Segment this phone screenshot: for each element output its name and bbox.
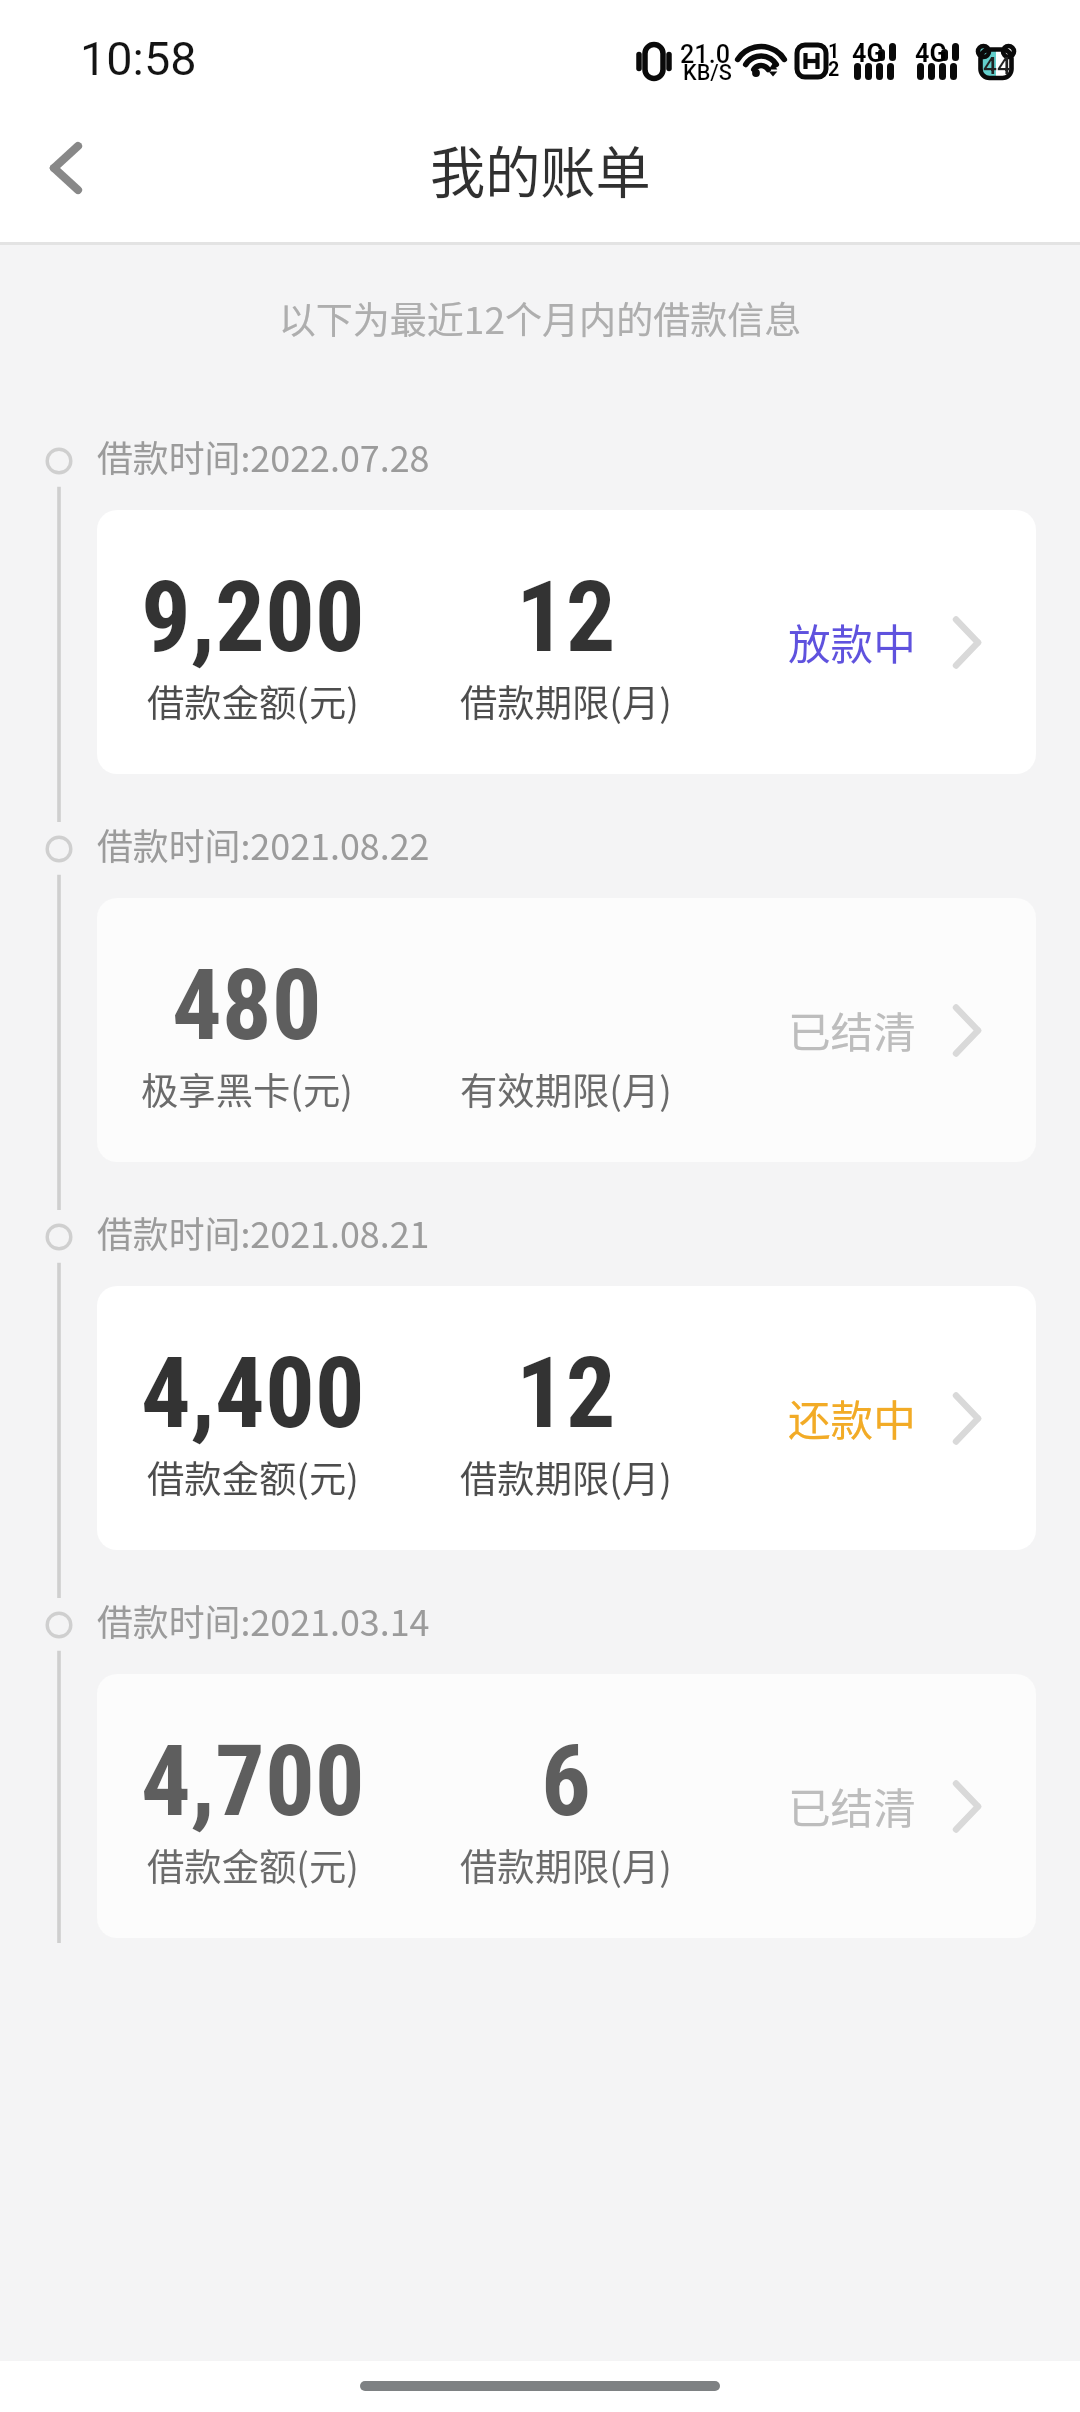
button[interactable]: 4,700	[97, 1674, 1036, 1938]
button[interactable]: 借款时间:2021.08.21	[97, 1202, 1036, 1262]
staticText: 借款金额(元)	[147, 674, 359, 728]
staticText: 1	[828, 40, 840, 63]
staticText: 6	[541, 1723, 591, 1838]
button[interactable]: Back	[21, 112, 111, 202]
staticText: 借款时间:2021.08.22	[97, 818, 430, 870]
staticText: 借款金额(元)	[147, 1838, 359, 1892]
staticText: 借款期限(月)	[460, 1450, 672, 1504]
staticText: 44	[983, 51, 1011, 80]
staticText: 借款时间:2021.08.21	[97, 1206, 430, 1258]
button[interactable]: 4,400	[97, 1286, 1036, 1550]
staticText: 12	[516, 1335, 616, 1450]
staticText: 4G	[915, 39, 947, 69]
staticText: 9,200	[141, 559, 365, 674]
staticText: 4,700	[141, 1723, 365, 1838]
staticText: 放款中	[788, 611, 916, 673]
button[interactable]: 480	[97, 898, 1036, 1162]
button[interactable]: 借款时间:2021.08.22	[97, 814, 1036, 874]
staticText: 借款期限(月)	[460, 1838, 672, 1892]
button[interactable]: 借款时间:2021.03.14	[97, 1590, 1036, 1650]
staticText: 以下为最近12个月内的借款信息	[0, 291, 1080, 345]
staticText: 我的账单	[430, 129, 651, 209]
staticText: 已结清	[788, 999, 916, 1061]
button[interactable]: 9,200	[97, 510, 1036, 774]
staticText: 10:58	[80, 32, 197, 87]
staticText: 4,400	[141, 1335, 365, 1450]
staticText: 2	[828, 58, 840, 81]
staticText: KB/S	[683, 60, 732, 85]
staticText: 4G	[852, 39, 884, 69]
button[interactable]: 借款时间:2022.07.28	[97, 426, 1036, 486]
staticText: 借款时间:2021.03.14	[97, 1594, 430, 1646]
staticText: 还款中	[788, 1387, 916, 1449]
staticText: 已结清	[788, 1775, 916, 1837]
staticText: 21.0	[680, 40, 730, 70]
staticText: 借款期限(月)	[460, 674, 672, 728]
staticText: 480	[172, 947, 322, 1062]
staticText: 极享黑卡(元)	[141, 1062, 353, 1116]
staticText: 借款金额(元)	[147, 1450, 359, 1504]
staticText: 12	[516, 559, 616, 674]
staticText: 有效期限(月)	[460, 1062, 672, 1116]
staticText: 借款时间:2022.07.28	[97, 430, 430, 482]
